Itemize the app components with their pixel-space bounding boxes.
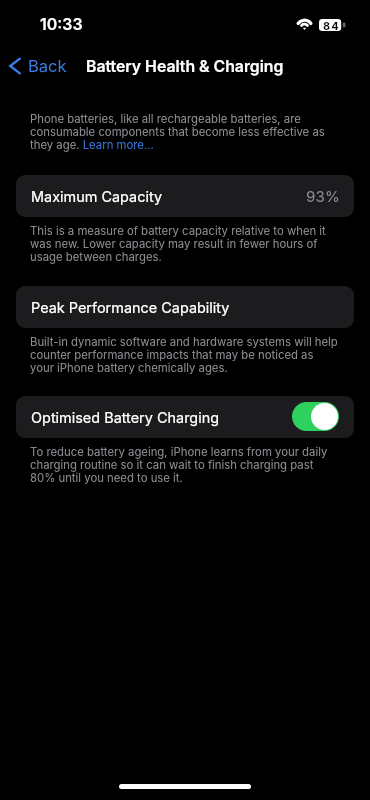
staticText: Peak Performance Capability	[31, 299, 230, 316]
button[interactable]: Optimised Battery Charging toggle	[292, 402, 339, 431]
staticText: Maximum Capacity	[31, 188, 163, 205]
button[interactable]: Peak Performance Capability	[16, 286, 354, 328]
staticText: Battery Health & Charging	[86, 57, 284, 76]
staticText: 10:33	[40, 15, 83, 34]
staticText: Built-in dynamic software and hardware s…	[30, 335, 340, 375]
button[interactable]: Maximum Capacity	[16, 175, 354, 217]
staticText: Phone batteries, like all rechargeable b…	[30, 112, 340, 152]
staticText: To reduce battery ageing, iPhone learns …	[30, 445, 340, 485]
button[interactable]: Optimised Battery Charging	[16, 396, 354, 438]
button[interactable]: Back	[7, 56, 69, 76]
staticText: This is a measure of battery capacity re…	[30, 224, 340, 264]
staticText: Back	[28, 56, 67, 76]
staticText: 84	[323, 19, 340, 31]
staticText: 93%	[306, 187, 341, 205]
staticText: Optimised Battery Charging	[31, 409, 220, 426]
button[interactable]: Learn more about battery health	[53, 137, 123, 151]
